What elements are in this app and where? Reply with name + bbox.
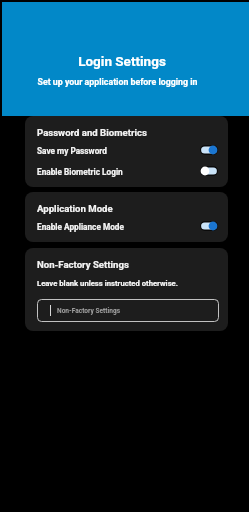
staticText: Non-Factory Settings	[37, 259, 129, 270]
staticText: Enable Appliance Mode	[37, 222, 124, 232]
staticText: Enable Biometric Login	[37, 167, 123, 177]
staticText: Save my Password	[37, 146, 107, 156]
staticText: Login Settings	[2, 53, 242, 69]
button[interactable]: Save my Password	[25, 140, 228, 161]
staticText: Leave blank unless instructed otherwise.	[37, 279, 178, 288]
button[interactable]: Non-Factory Settings	[37, 299, 219, 322]
other: On	[200, 221, 218, 232]
staticText: Application Mode	[37, 203, 113, 214]
other: On	[200, 145, 218, 156]
staticText: Set up your application before logging i…	[2, 77, 233, 87]
staticText: Password and Biometrics	[37, 127, 147, 138]
other: Off	[200, 166, 218, 177]
button[interactable]: Enable Appliance Mode	[25, 216, 228, 237]
staticText: Non-Factory Settings	[57, 307, 121, 315]
button[interactable]: Enable Biometric Login	[25, 161, 228, 182]
